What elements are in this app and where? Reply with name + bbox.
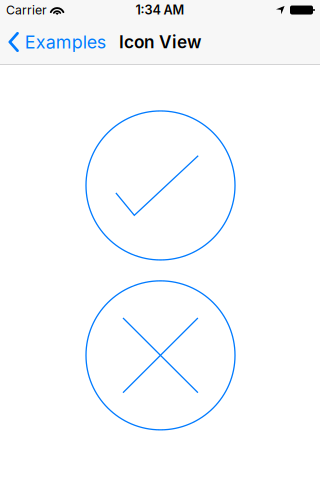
staticText: Carrier bbox=[6, 3, 47, 17]
staticText: Icon View bbox=[119, 32, 201, 52]
staticText: Examples bbox=[25, 31, 106, 53]
button[interactable]: Examples bbox=[0, 20, 116, 64]
staticText: 1:34 AM bbox=[135, 2, 184, 18]
